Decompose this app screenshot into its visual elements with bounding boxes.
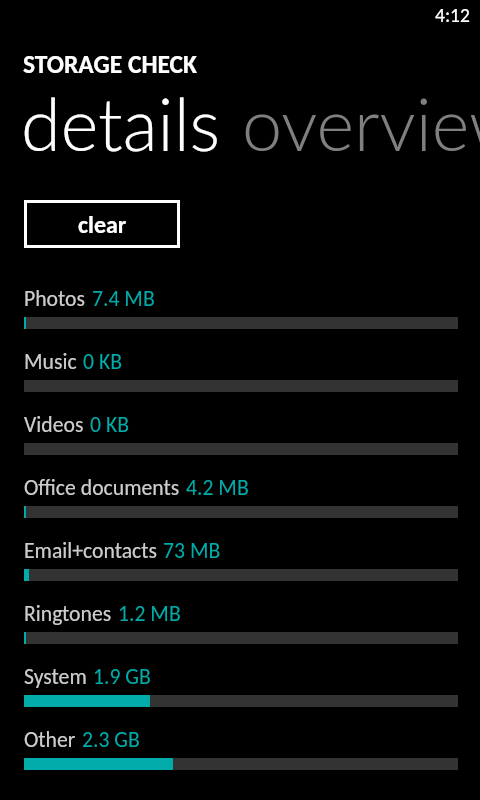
button[interactable]: Other: [24, 726, 140, 752]
staticText: 4:12: [435, 3, 470, 27]
staticText: 0 KB: [90, 411, 129, 437]
staticText: 2.3 GB: [82, 726, 140, 752]
staticText: 0 KB: [83, 348, 122, 374]
staticText: clear: [78, 210, 127, 239]
staticText: 1.9 GB: [93, 663, 151, 689]
button[interactable]: details: [21, 80, 221, 166]
staticText: 7.4 MB: [92, 285, 155, 311]
staticText: Office documents: [24, 474, 180, 500]
staticText: 73 MB: [163, 537, 221, 563]
staticText: Music: [24, 348, 77, 374]
staticText: Videos: [24, 411, 84, 437]
button[interactable]: overview: [242, 80, 480, 166]
button[interactable]: Office documents: [24, 474, 249, 500]
button[interactable]: STORAGE CHECK: [23, 49, 198, 80]
staticText: Other: [24, 726, 76, 752]
button[interactable]: Ringtones: [24, 600, 181, 626]
staticText: Email+contacts: [24, 537, 157, 563]
button[interactable]: clear: [24, 200, 180, 248]
staticText: 1.2 MB: [118, 600, 181, 626]
button[interactable]: Music: [24, 348, 122, 374]
button[interactable]: Videos: [24, 411, 129, 437]
button[interactable]: Email+contacts: [24, 537, 221, 563]
staticText: 4.2 MB: [186, 474, 249, 500]
button[interactable]: Photos: [24, 285, 155, 311]
staticText: System: [24, 663, 87, 689]
staticText: Ringtones: [24, 600, 112, 626]
staticText: Photos: [24, 285, 86, 311]
button[interactable]: System: [24, 663, 151, 689]
